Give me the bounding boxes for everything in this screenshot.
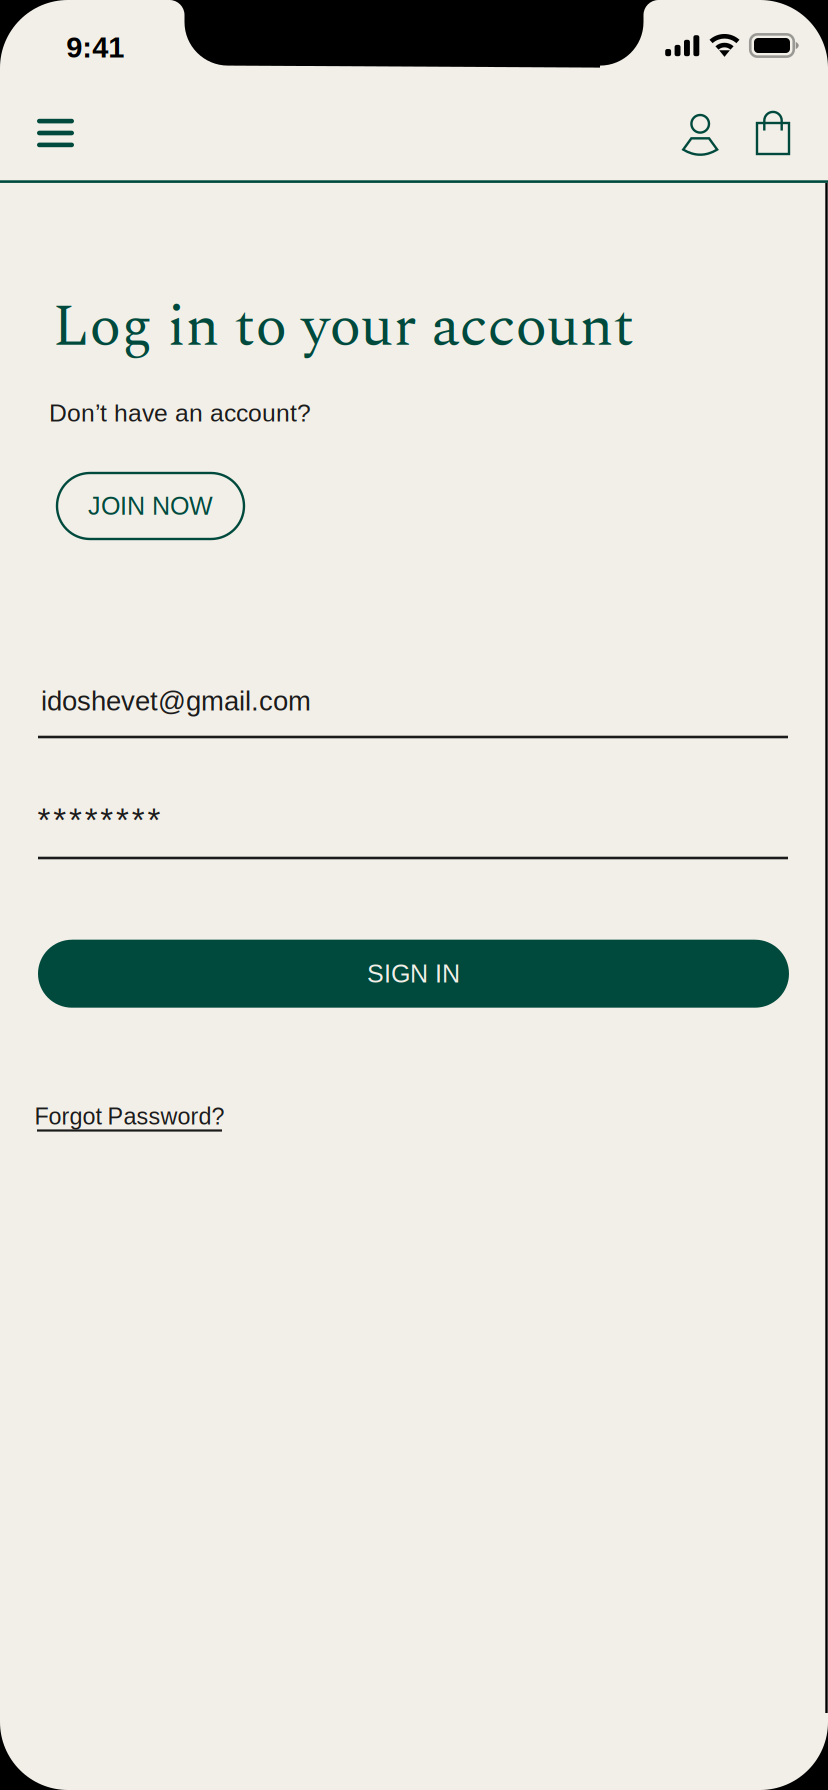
staticText: *	[37, 801, 50, 838]
staticText: *	[147, 801, 160, 838]
staticText: *	[69, 801, 82, 838]
staticText: 9:41	[66, 31, 124, 64]
button[interactable]: Shopping bag	[737, 96, 809, 170]
button[interactable]: SIGN IN	[38, 940, 789, 1008]
staticText: *	[53, 801, 66, 838]
staticText: Log in to your account	[52, 283, 634, 372]
button[interactable]: JOIN NOW	[57, 473, 244, 539]
staticText: *	[116, 801, 129, 838]
staticText: *	[100, 801, 113, 838]
staticText: JOIN NOW	[88, 492, 213, 520]
staticText: *	[85, 801, 98, 838]
button[interactable]: Account	[662, 98, 738, 172]
staticText: idoshevet@gmail.com	[41, 686, 311, 716]
button[interactable]: Menu	[13, 96, 97, 170]
staticText: *	[132, 801, 145, 838]
button[interactable]: Forgot Password?	[36, 1105, 226, 1135]
staticText: SIGN IN	[367, 960, 460, 988]
staticText: Forgot Password?	[34, 1103, 224, 1130]
staticText: Don’t have an account?	[49, 399, 311, 427]
